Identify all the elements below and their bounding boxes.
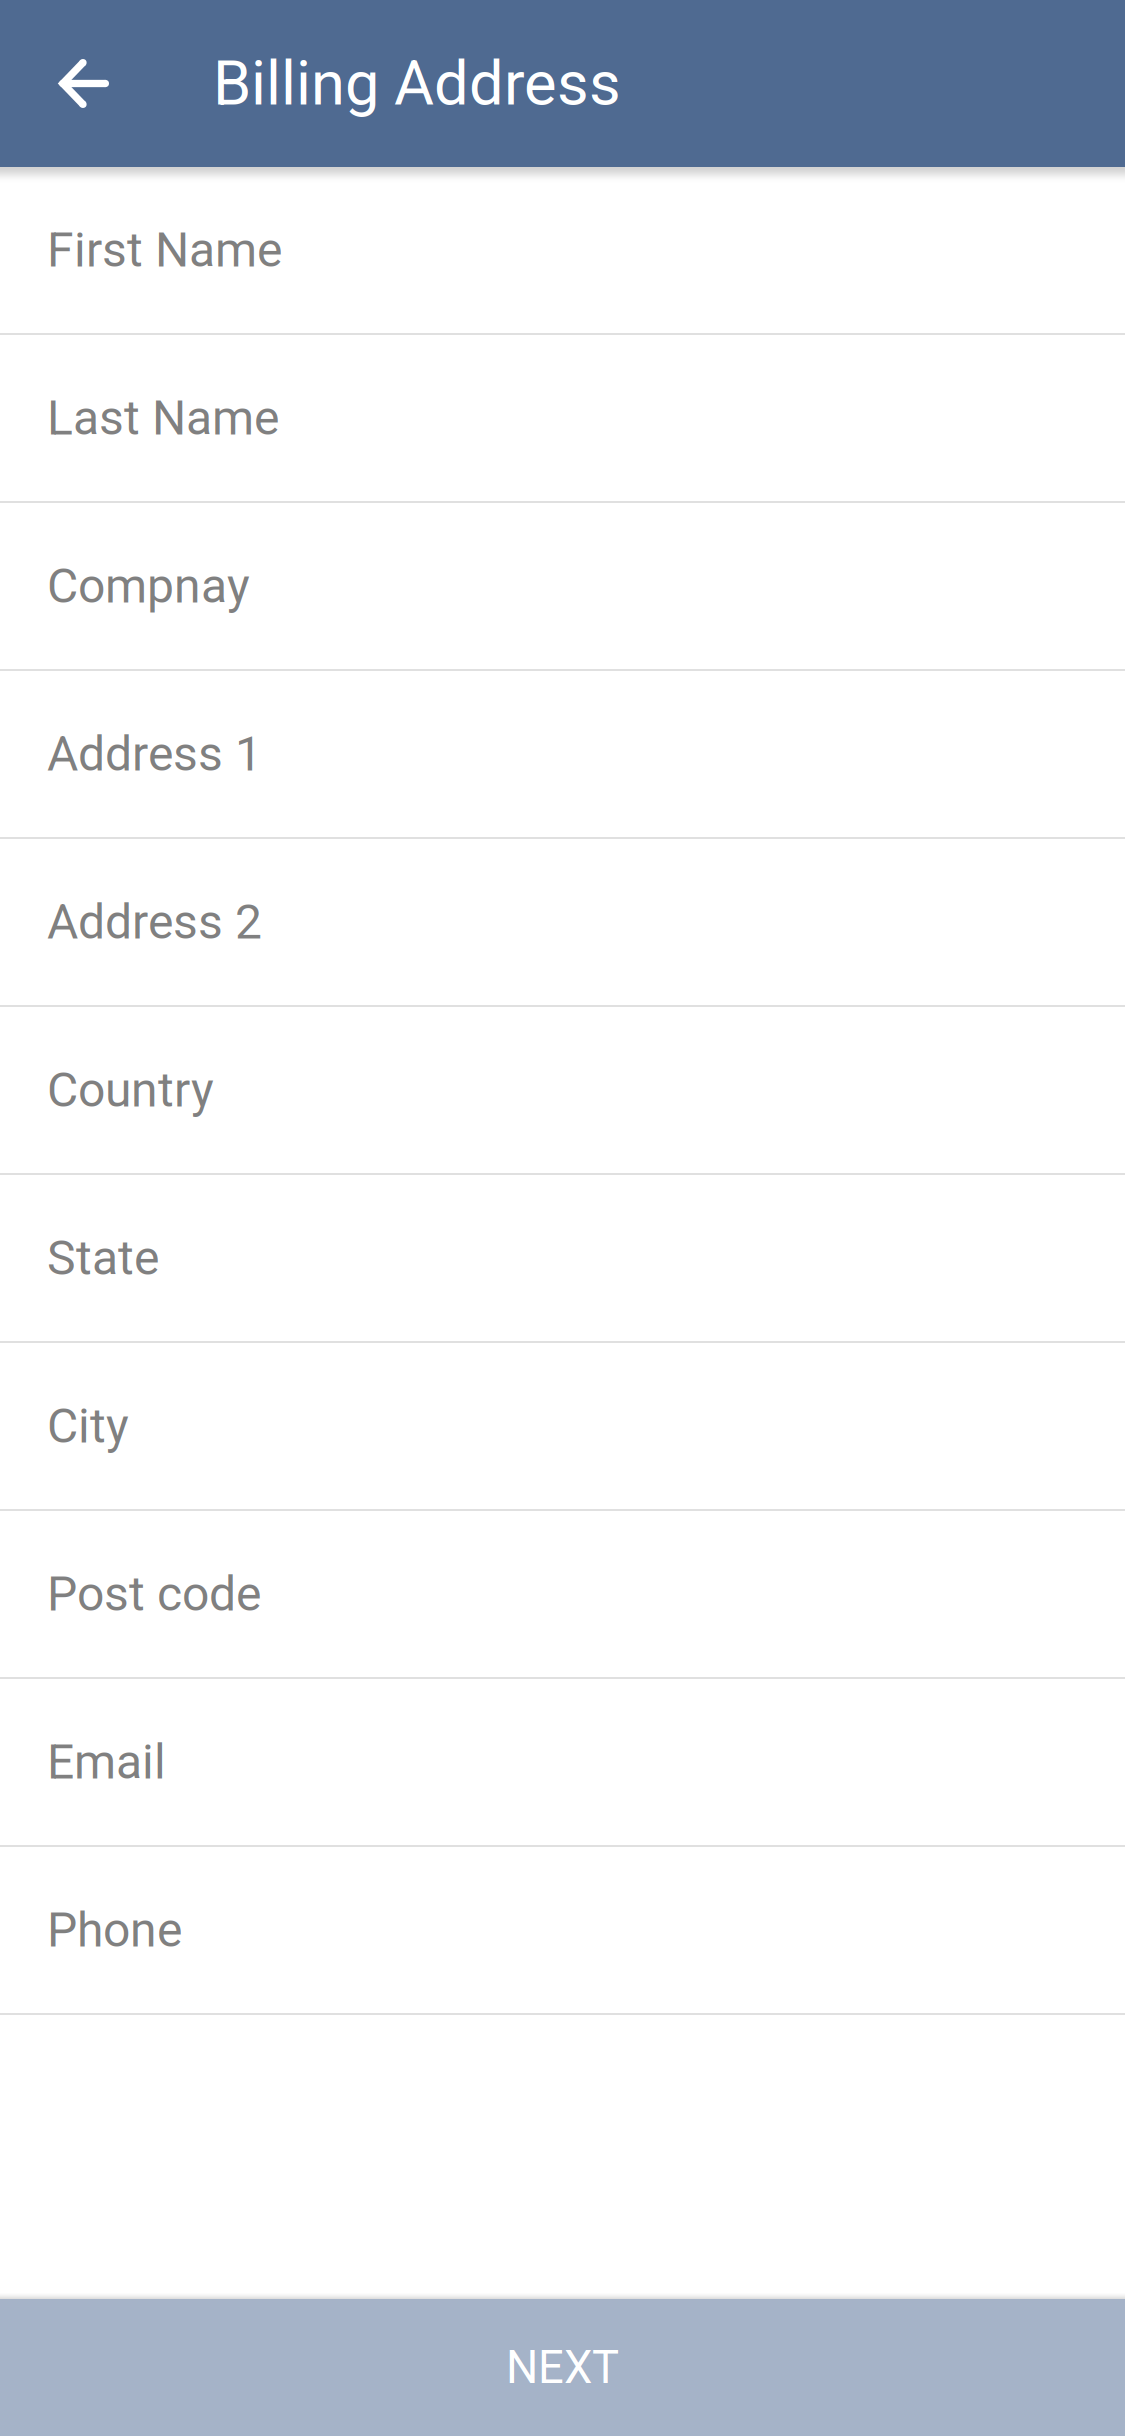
- staticText: Address 2: [47, 894, 262, 950]
- staticText: Billing Address: [213, 48, 621, 119]
- button[interactable]: Back: [0, 0, 167, 167]
- staticText: State: [47, 1230, 159, 1286]
- button[interactable]: Phone: [0, 1847, 1125, 2015]
- button[interactable]: First Name: [0, 167, 1125, 335]
- staticText: NEXT: [506, 2341, 619, 2394]
- staticText: Post code: [47, 1566, 261, 1622]
- staticText: First Name: [47, 222, 282, 278]
- staticText: Email: [47, 1734, 166, 1790]
- button[interactable]: State: [0, 1175, 1125, 1343]
- staticText: Country: [47, 1062, 214, 1118]
- staticText: Last Name: [47, 390, 279, 446]
- button[interactable]: Address 2: [0, 839, 1125, 1007]
- button[interactable]: Post code: [0, 1511, 1125, 1679]
- button[interactable]: City: [0, 1343, 1125, 1511]
- button[interactable]: Compnay: [0, 503, 1125, 671]
- button[interactable]: Country: [0, 1007, 1125, 1175]
- button[interactable]: Last Name: [0, 335, 1125, 503]
- staticText: Address 1: [47, 726, 262, 782]
- staticText: Compnay: [47, 558, 250, 614]
- staticText: City: [47, 1398, 129, 1454]
- button[interactable]: NEXT: [0, 2299, 1125, 2436]
- staticText: Phone: [47, 1902, 182, 1958]
- button[interactable]: Email: [0, 1679, 1125, 1847]
- button[interactable]: Address 1: [0, 671, 1125, 839]
